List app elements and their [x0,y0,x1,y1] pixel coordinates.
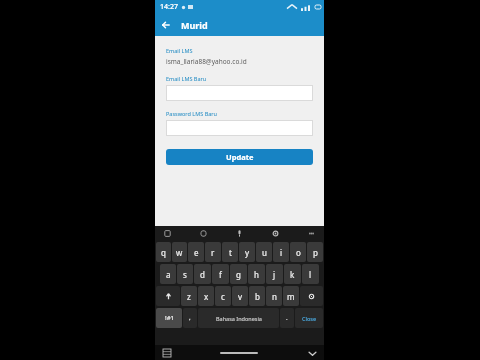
button[interactable]: Update [166,149,313,165]
staticText: . [286,314,288,322]
button[interactable]: n [266,286,282,306]
button[interactable]: Stickers [197,227,210,240]
button[interactable]: r [205,242,221,262]
button[interactable]: b [249,286,265,306]
button[interactable]: o [290,242,306,262]
button[interactable]: c [215,286,231,306]
staticText: b [255,291,260,302]
staticText: Update [226,152,254,162]
button[interactable]: f [212,264,229,284]
button[interactable]: u [256,242,272,262]
button[interactable]: g [230,264,247,284]
staticText: !#1 [165,314,174,322]
staticText: s [183,269,187,280]
button[interactable] [166,120,313,136]
staticText: Bahasa Indonesia [216,315,262,322]
staticText: isma_llaria88@yahoo.co.id [166,57,247,66]
button[interactable]: m [283,286,299,306]
button[interactable]: Clipboard [161,227,174,240]
staticText: l [309,269,312,280]
button[interactable]: !#1 [156,308,182,328]
button[interactable]: Back [155,14,177,36]
staticText: r [211,247,215,258]
staticText: p [313,247,318,258]
button[interactable]: , [183,308,197,328]
staticText: e [194,247,199,258]
button[interactable]: i [273,242,289,262]
staticText: x [204,291,209,302]
button[interactable]: Settings [269,227,282,240]
button[interactable]: Keyboard layout [161,347,173,359]
button[interactable]: q [156,242,171,262]
staticText: z [187,291,191,302]
staticText: y [245,247,250,258]
staticText: Email LMS [166,47,193,54]
button[interactable]: s [177,264,193,284]
button[interactable]: Backspace [300,286,323,306]
button[interactable]: x [198,286,214,306]
staticText: c [221,291,225,302]
staticText: 14:27 [160,2,178,12]
button[interactable] [166,85,313,101]
button[interactable]: Close [295,308,323,328]
button[interactable]: Shift [156,286,180,306]
button[interactable]: y [239,242,255,262]
staticText: i [280,247,283,258]
staticText: o [296,247,301,258]
button[interactable]: w [172,242,187,262]
staticText: u [262,247,267,258]
staticText: h [254,269,259,280]
staticText: t [229,247,232,258]
button[interactable]: d [194,264,211,284]
staticText: m [287,291,295,302]
staticText: Password LMS Baru [166,110,217,117]
button[interactable]: . [280,308,294,328]
button[interactable]: j [266,264,283,284]
button[interactable]: v [232,286,248,306]
staticText: d [200,269,205,280]
button[interactable]: Hide keyboard [306,347,318,359]
staticText: f [219,269,222,280]
staticText: Close [302,315,317,322]
button[interactable]: e [188,242,204,262]
button[interactable]: l [302,264,319,284]
staticText: a [166,269,171,280]
staticText: j [273,269,276,280]
button[interactable]: Bahasa Indonesia [198,308,279,328]
button[interactable]: a [160,264,176,284]
staticText: k [290,269,295,280]
button[interactable]: h [248,264,265,284]
button[interactable]: z [181,286,197,306]
staticText: v [238,291,243,302]
staticText: , [189,314,191,322]
button[interactable]: Voice input [233,227,246,240]
button[interactable]: p [307,242,323,262]
staticText: Murid [181,19,208,31]
staticText: g [236,269,241,280]
button[interactable]: k [284,264,301,284]
button[interactable]: t [222,242,238,262]
staticText: n [272,291,277,302]
button[interactable]: More options [305,227,318,240]
staticText: q [161,247,166,258]
staticText: Email LMS Baru [166,75,207,82]
staticText: w [176,247,183,258]
